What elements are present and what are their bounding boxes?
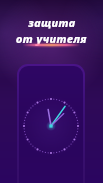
button[interactable]: Phone with clock [17,64,85,183]
button[interactable]: защита [0,15,103,46]
staticText: защита [28,15,76,30]
staticText: от учителя [16,31,87,46]
